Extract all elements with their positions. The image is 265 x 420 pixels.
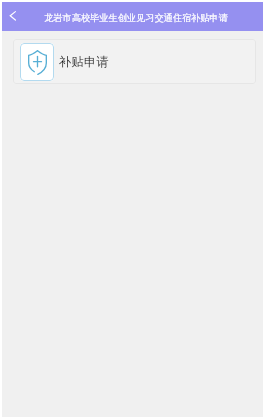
- button[interactable]: Back: [2, 6, 24, 28]
- staticText: 补贴申请: [59, 54, 109, 70]
- button[interactable]: 补贴申请: [13, 39, 256, 84]
- staticText: 龙岩市高校毕业生创业见习交通住宿补贴申请: [44, 12, 228, 24]
